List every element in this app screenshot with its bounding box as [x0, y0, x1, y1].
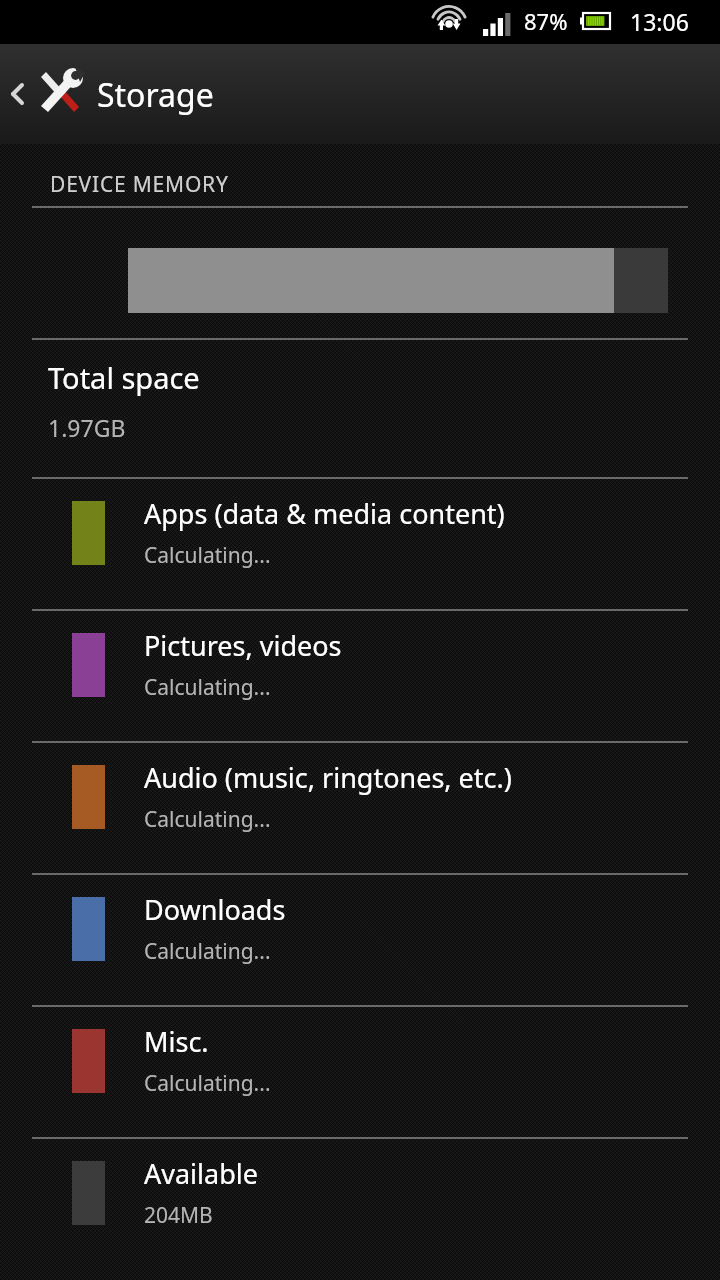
- staticText: Total space: [48, 358, 200, 397]
- button[interactable]: Available: [0, 1139, 720, 1269]
- staticText: Misc.: [144, 1023, 209, 1060]
- staticText: Pictures, videos: [144, 627, 342, 664]
- staticText: Calculating...: [144, 937, 271, 966]
- button[interactable]: Navigate up — Storage: [0, 44, 720, 144]
- staticText: Calculating...: [144, 541, 271, 570]
- staticText: DEVICE MEMORY: [50, 170, 229, 199]
- staticText: 1.97GB: [48, 412, 126, 443]
- staticText: 13:06: [630, 6, 689, 37]
- staticText: 87%: [524, 6, 568, 36]
- staticText: Calculating...: [144, 1069, 271, 1098]
- staticText: Apps (data & media content): [144, 495, 505, 532]
- staticText: Storage: [97, 73, 214, 117]
- staticText: Available: [144, 1155, 258, 1192]
- button[interactable]: Downloads: [0, 875, 720, 1005]
- staticText: Calculating...: [144, 805, 271, 834]
- button[interactable]: Apps (data & media content): [0, 479, 720, 609]
- staticText: Downloads: [144, 891, 286, 928]
- button[interactable]: Misc.: [0, 1007, 720, 1137]
- staticText: Audio (music, ringtones, etc.): [144, 759, 512, 796]
- staticText: 204MB: [144, 1201, 213, 1230]
- staticText: Calculating...: [144, 673, 271, 702]
- button[interactable]: Audio (music, ringtones, etc.): [0, 743, 720, 873]
- button[interactable]: Pictures, videos: [0, 611, 720, 741]
